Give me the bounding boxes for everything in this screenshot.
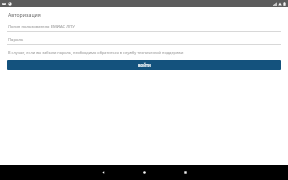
staticText: Авторизация — [8, 11, 41, 18]
button[interactable]: Recent apps — [178, 165, 192, 180]
staticText: Логин пользователя ЕМИАС ЛПУ — [8, 24, 75, 30]
button[interactable]: войти — [7, 60, 281, 70]
staticText: Пароль — [8, 37, 24, 43]
staticText: войти — [138, 62, 151, 68]
button[interactable]: Back — [96, 165, 110, 180]
button[interactable]: Home — [137, 165, 151, 180]
button[interactable]: Логин пользователя ЕМИАС ЛПУ — [8, 23, 280, 31]
staticText: В случае, если вы забыли пароль, необход… — [8, 50, 184, 55]
button[interactable]: Пароль — [8, 36, 280, 44]
